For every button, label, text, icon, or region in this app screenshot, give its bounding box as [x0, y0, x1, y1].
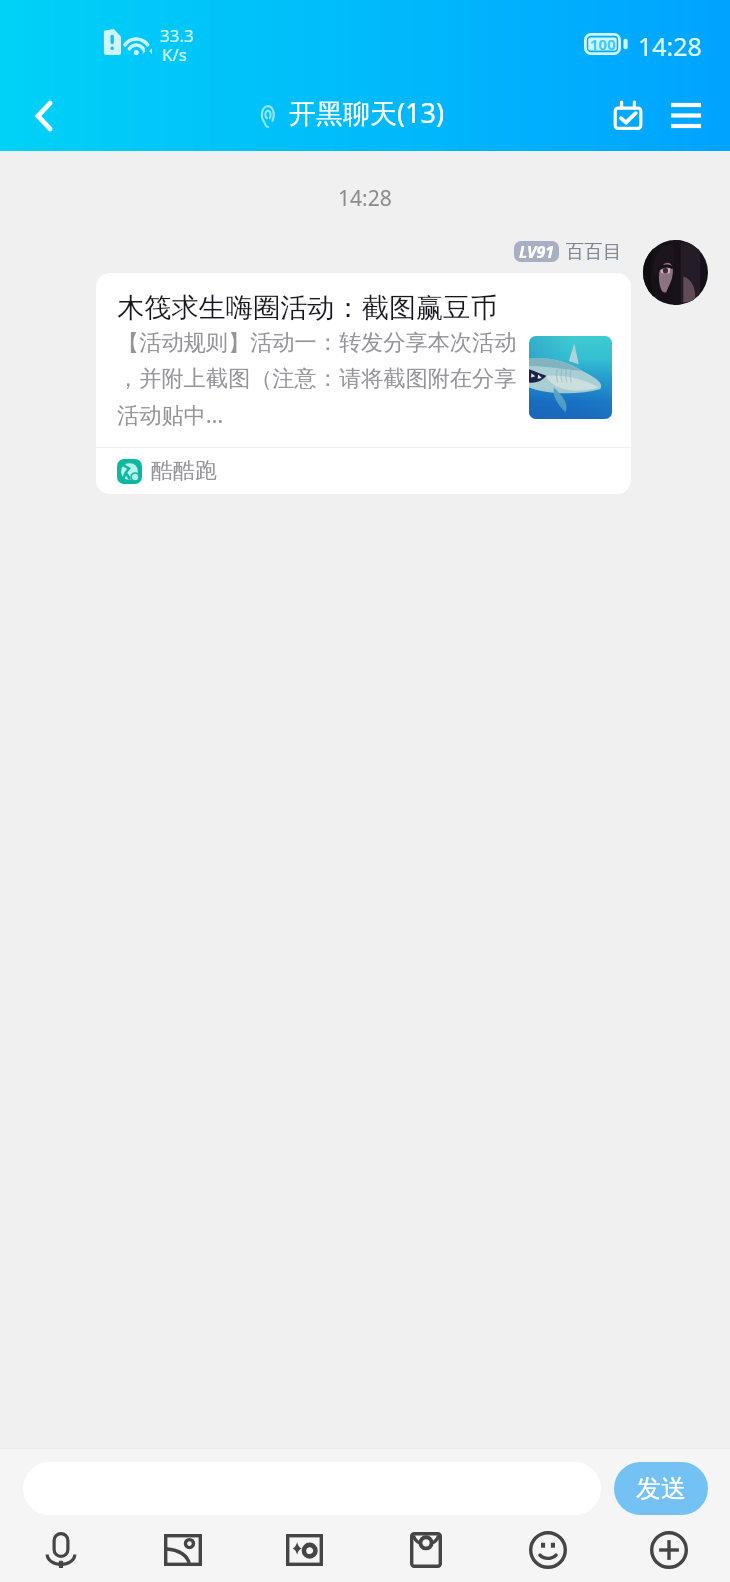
- button[interactable]: Emoji: [516, 1524, 580, 1576]
- staticText: 发送: [636, 1473, 686, 1504]
- button[interactable]: 发送: [614, 1462, 708, 1515]
- button[interactable]: 木筏求生嗨圈活动：截图赢豆币: [96, 273, 631, 494]
- staticText: 木筏求生嗨圈活动：截图赢豆币: [117, 291, 498, 325]
- staticText: 14:28: [638, 29, 702, 63]
- staticText: K/s: [162, 43, 187, 66]
- button[interactable]: Avatar: [643, 240, 708, 305]
- button[interactable]: Camera: [272, 1524, 336, 1576]
- staticText: 100: [590, 34, 616, 54]
- button[interactable]: Red packet: [394, 1524, 458, 1576]
- button[interactable]: Check in: [597, 80, 659, 151]
- staticText: LV91: [519, 241, 555, 262]
- staticText: 开黑聊天(13): [289, 94, 445, 131]
- staticText: 酷酷跑: [151, 457, 217, 485]
- staticText: 33.3: [160, 24, 194, 47]
- button[interactable]: Voice message: [29, 1524, 93, 1576]
- staticText: 14:28: [338, 184, 392, 213]
- staticText: 【活动规则】活动一：转发分享本次活动 ，并附上截图（注意：请将截图附在分享 活动…: [117, 329, 517, 430]
- button[interactable]: More: [637, 1524, 701, 1576]
- button[interactable]: Photo: [151, 1524, 215, 1576]
- button[interactable]: Menu: [657, 80, 715, 151]
- button[interactable]: Back: [8, 80, 80, 151]
- staticText: 百百目: [566, 240, 622, 263]
